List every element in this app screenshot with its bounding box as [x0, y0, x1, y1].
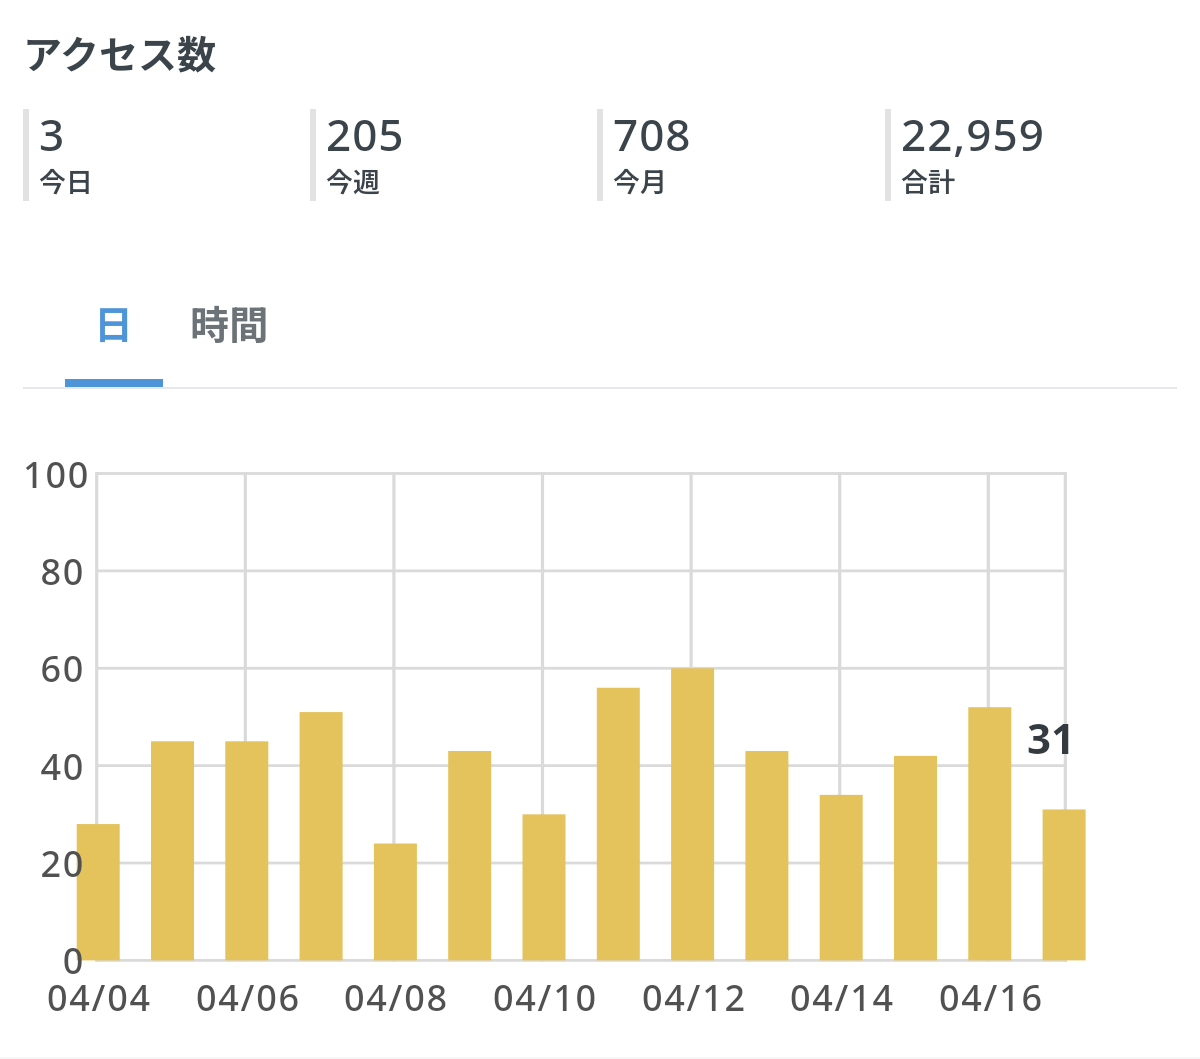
button[interactable]: 708 — [597, 109, 885, 208]
staticText: 20 — [40, 839, 85, 888]
staticText: 100 — [23, 450, 90, 499]
other: Daily access count bar chart — [0, 0, 1200, 1059]
staticText: 今日 — [39, 161, 93, 200]
button[interactable]: 日 — [65, 275, 163, 388]
button[interactable]: 205 — [310, 109, 597, 208]
staticText: 04/10 — [493, 973, 598, 1022]
staticText: 04/04 — [47, 973, 152, 1022]
staticText: 3 — [39, 104, 66, 164]
staticText: 04/08 — [344, 973, 449, 1022]
button[interactable]: 22,959 — [885, 109, 1173, 208]
staticText: 今月 — [613, 161, 667, 200]
staticText: 60 — [40, 644, 85, 693]
button[interactable]: 3 — [23, 109, 310, 208]
button[interactable]: 時間 — [162, 275, 296, 388]
staticText: 22,959 — [901, 104, 1045, 164]
staticText: 31 — [1027, 709, 1076, 766]
staticText: 80 — [40, 547, 85, 596]
staticText: 04/12 — [642, 973, 747, 1022]
staticText: 時間 — [190, 294, 269, 350]
staticText: 40 — [40, 742, 85, 791]
staticText: アクセス数 — [23, 24, 217, 80]
staticText: 今週 — [326, 161, 380, 200]
staticText: 合計 — [901, 161, 955, 200]
staticText: 04/06 — [196, 973, 301, 1022]
staticText: 04/16 — [939, 973, 1044, 1022]
staticText: 04/14 — [790, 973, 895, 1022]
staticText: 708 — [613, 104, 692, 164]
staticText: 日 — [94, 294, 134, 350]
staticText: 0 — [62, 936, 85, 985]
staticText: 205 — [326, 104, 405, 164]
